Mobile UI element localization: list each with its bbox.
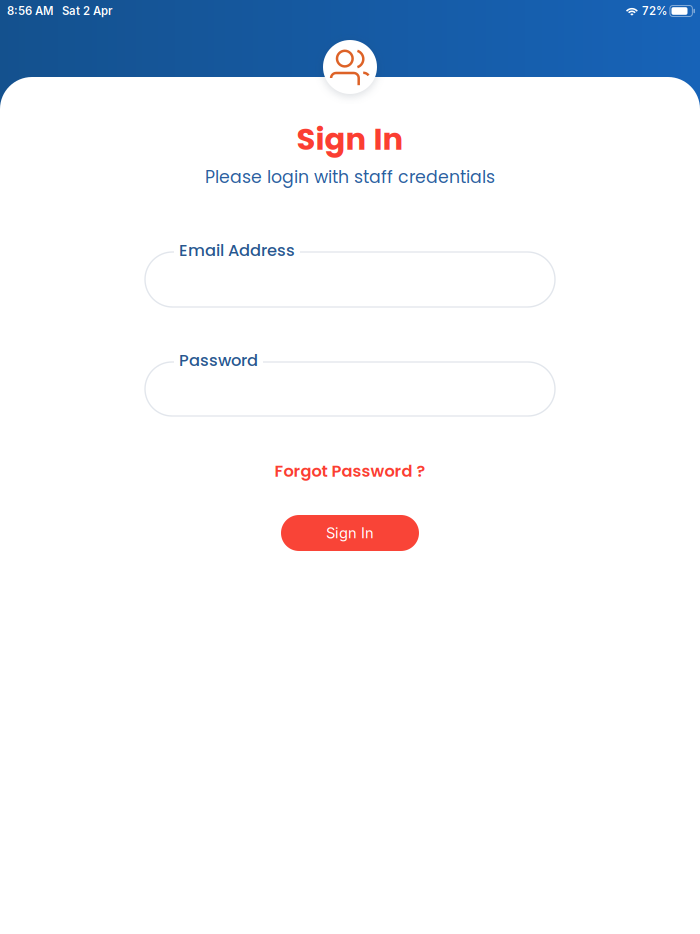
- staticText: 8:56 AM: [7, 4, 53, 18]
- button[interactable]: Password: [145, 362, 555, 416]
- staticText: Sat 2 Apr: [62, 4, 112, 18]
- staticText: Please login with staff credentials: [205, 165, 495, 189]
- staticText: Email Address: [179, 239, 295, 262]
- button[interactable]: Forgot Password ?: [266, 452, 433, 490]
- staticText: 72%: [642, 4, 667, 18]
- staticText: Forgot Password ?: [274, 460, 425, 482]
- button[interactable]: Sign In: [281, 515, 419, 551]
- staticText: Sign In: [296, 117, 403, 160]
- button[interactable]: Email Address: [145, 252, 555, 307]
- staticText: Sign In: [326, 524, 374, 542]
- staticText: Password: [179, 349, 258, 372]
